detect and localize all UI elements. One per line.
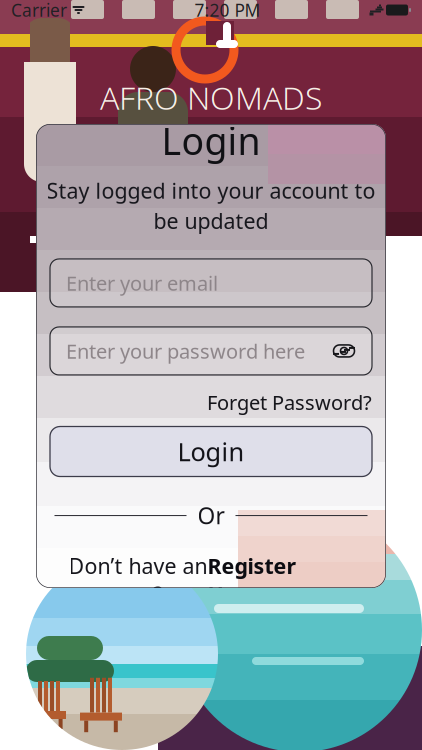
- staticText: Login: [177, 435, 244, 468]
- button[interactable]: Forget Password?: [207, 389, 372, 416]
- button[interactable]: Don’t have an account ?: [68, 552, 353, 608]
- staticText: Or: [197, 500, 224, 531]
- staticText: Login: [161, 116, 260, 165]
- staticText: Enter your password here: [66, 338, 305, 364]
- staticText: Forget Password?: [207, 389, 372, 416]
- staticText: Carrier: [11, 0, 67, 21]
- button[interactable]: Enter your password here: [50, 327, 372, 375]
- staticText: Stay logged into your account to: [46, 176, 375, 205]
- staticText: Enter your email: [66, 270, 218, 296]
- staticText: be updated: [153, 207, 268, 235]
- staticText: 7:20 PM: [194, 0, 260, 21]
- button[interactable]: Enter your email: [50, 259, 372, 307]
- staticText: AFRO NOMADS: [100, 76, 322, 118]
- staticText: Don’t have an account ?: [68, 552, 207, 608]
- staticText: Register Here: [207, 552, 296, 608]
- button[interactable]: Login: [50, 426, 372, 476]
